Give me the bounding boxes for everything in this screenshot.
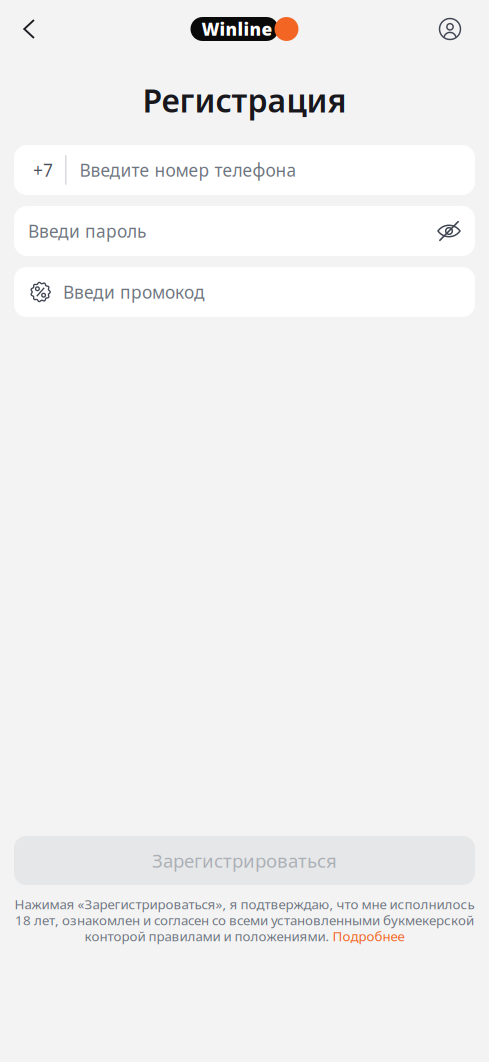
staticText: Введи пароль xyxy=(28,219,146,242)
button[interactable]: Назад xyxy=(7,7,51,51)
staticText: 18 лет, ознакомлен и согласен со всеми у… xyxy=(15,911,474,929)
button[interactable]: Профиль xyxy=(428,7,472,51)
staticText: Зарегистрироваться xyxy=(152,848,337,873)
button[interactable]: Зарегистрироваться xyxy=(14,836,475,885)
button[interactable]: Подробнее xyxy=(332,927,404,945)
staticText: Введите номер телефона xyxy=(79,158,296,181)
button[interactable]: Введи промокод xyxy=(14,267,475,317)
staticText: Подробнее xyxy=(332,927,404,945)
button[interactable]: Введи пароль xyxy=(14,206,427,256)
staticText: Нажимая «Зарегистрироваться», я подтверж… xyxy=(14,895,474,913)
staticText: Введи промокод xyxy=(63,280,205,303)
staticText: +7 xyxy=(33,158,53,181)
button[interactable]: Показать пароль xyxy=(427,209,471,253)
staticText: Winline xyxy=(201,17,272,40)
button[interactable]: +7 xyxy=(14,145,475,195)
staticText: конторой правилами и положениями. xyxy=(84,927,332,945)
staticText: Регистрация xyxy=(142,79,346,121)
